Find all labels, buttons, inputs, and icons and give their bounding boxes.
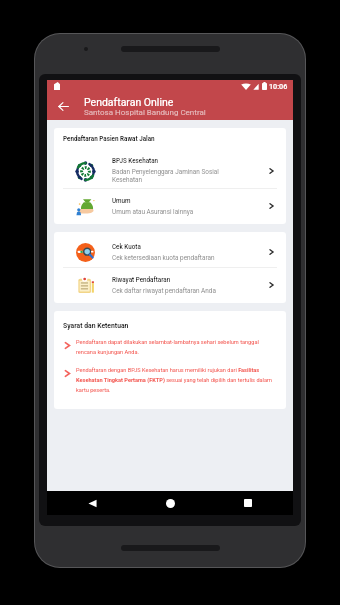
button[interactable]: Back xyxy=(49,92,77,120)
button[interactable]: Riwayat Pendaftaran xyxy=(54,268,286,300)
button[interactable]: Back xyxy=(85,496,99,510)
button[interactable]: Home xyxy=(163,496,177,510)
staticText: Pendaftaran Online xyxy=(84,96,174,108)
staticText: Riwayat Pendaftaran xyxy=(112,276,171,283)
staticText: Santosa Hospital Bandung Central xyxy=(84,108,206,117)
staticText: Umum atau Asuransi lainnya xyxy=(112,208,194,216)
staticText: Umum xyxy=(112,197,131,204)
button[interactable]: Recent apps xyxy=(241,496,255,510)
staticText: Cek daftar riwayat pendaftaran Anda xyxy=(112,287,216,295)
staticText: BPJS Kesehatan xyxy=(112,157,159,164)
staticText: Pendaftaran dapat dilakukan selambat-lam… xyxy=(76,339,274,355)
staticText: Cek Kuota xyxy=(112,243,141,250)
staticText: Syarat dan Ketentuan xyxy=(63,322,129,330)
button[interactable]: Cek Kuota xyxy=(54,235,286,267)
button[interactable]: BPJS Kesehatan xyxy=(54,151,286,188)
staticText: Cek ketersediaan kuota pendaftaran xyxy=(112,254,215,262)
staticText: 10:06 xyxy=(269,82,288,90)
staticText: Pendaftaran dengan BPJS Kesehatan harus … xyxy=(76,367,274,393)
staticText: Badan Penyelenggara Jaminan Sosial Keseh… xyxy=(112,168,222,184)
staticText: Pendaftaran Pasien Rawat Jalan xyxy=(63,135,155,142)
button[interactable]: Umum xyxy=(54,189,286,221)
